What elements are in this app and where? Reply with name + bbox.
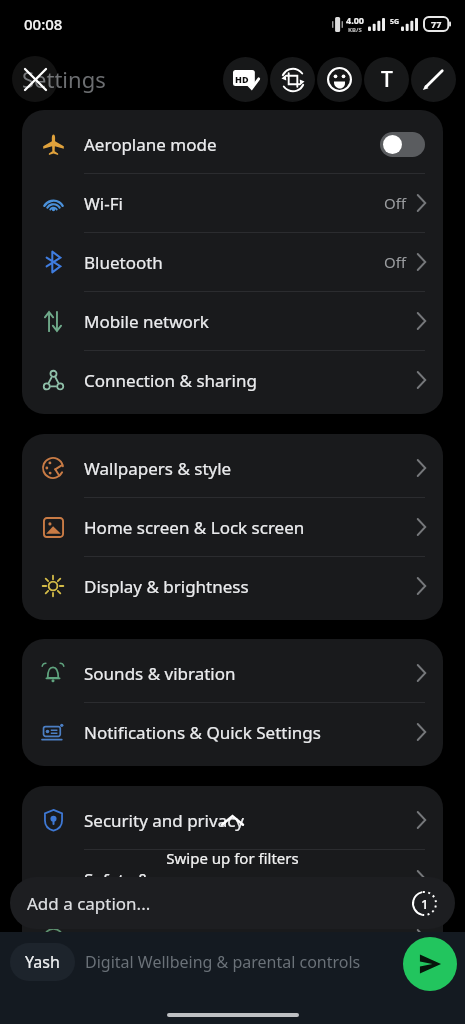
staticText: Settings — [22, 64, 106, 94]
button[interactable]: Notifications & Quick Settings — [22, 703, 443, 761]
button[interactable]: View once — [407, 886, 441, 920]
button[interactable]: Home screen & Lock screen — [22, 498, 443, 556]
button[interactable]: Aeroplane mode — [22, 115, 443, 173]
button[interactable]: Wi-Fi — [22, 174, 443, 232]
staticText: 5G — [390, 17, 400, 27]
staticText: HD — [235, 73, 249, 85]
staticText: Yash — [25, 951, 60, 973]
button[interactable]: Connection & sharing — [22, 351, 443, 409]
button[interactable]: Sounds & vibration — [22, 644, 443, 702]
staticText: Swipe up for filters — [166, 848, 299, 868]
button[interactable]: Display & brightness — [22, 557, 443, 615]
staticText: 77 — [431, 18, 442, 30]
staticText: Connection & sharing — [84, 369, 257, 392]
staticText: 1 — [421, 895, 429, 913]
staticText: Off — [384, 193, 407, 213]
button[interactable]: Add text — [364, 57, 409, 102]
button[interactable]: HD quality — [223, 57, 268, 102]
staticText: Digital Wellbeing & parental controls — [85, 951, 361, 973]
staticText: T — [381, 65, 393, 94]
staticText: Wi-Fi — [84, 192, 123, 215]
staticText: Off — [384, 252, 407, 272]
staticText: Add a caption... — [27, 892, 151, 915]
staticText: Wallpapers & style — [84, 457, 232, 480]
button[interactable]: Add a caption... — [10, 877, 455, 929]
button[interactable]: Bluetooth — [22, 233, 443, 291]
staticText: Security and privacy — [84, 809, 245, 832]
staticText: Aeroplane mode — [84, 133, 217, 156]
button[interactable]: Send — [403, 937, 457, 991]
button[interactable]: Security and privacy — [22, 791, 443, 849]
staticText: Home screen & Lock screen — [84, 516, 305, 539]
button[interactable]: Crop and rotate — [270, 57, 315, 102]
staticText: Bluetooth — [84, 251, 163, 274]
staticText: KB/S — [348, 26, 362, 34]
button[interactable]: Mobile network — [22, 292, 443, 350]
staticText: Notifications & Quick Settings — [84, 721, 321, 744]
button[interactable]: Wallpapers & style — [22, 439, 443, 497]
button[interactable]: SOS — [22, 850, 443, 908]
staticText: Mobile network — [84, 310, 209, 333]
staticText: Sounds & vibration — [84, 662, 236, 685]
staticText: 00:08 — [24, 14, 63, 34]
button[interactable]: Aeroplane mode toggle — [380, 132, 425, 157]
button[interactable]: Draw — [411, 57, 456, 102]
button[interactable]: Close — [12, 56, 58, 102]
staticText: 4.00 — [346, 14, 364, 26]
button[interactable]: Yash — [25, 943, 60, 981]
button[interactable]: Digital Wellbeing & parental controls — [22, 909, 443, 967]
staticText: Display & brightness — [84, 575, 249, 598]
button[interactable]: Add sticker — [317, 57, 362, 102]
staticText: Safety & emergency — [84, 868, 244, 891]
